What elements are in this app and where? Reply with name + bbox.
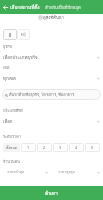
- staticText: ดูสิ่งที่ค้นหา: [43, 14, 64, 21]
- staticText: ประเภทที่พัก: [3, 108, 24, 114]
- staticText: เลือกประเภทธุรกิจ: [3, 54, 38, 61]
- button[interactable]: เลือก: [3, 118, 100, 125]
- button[interactable]: ราคาต่ำสุด: [3, 169, 48, 175]
- button[interactable]: ทุกเขต: [3, 75, 100, 82]
- button[interactable]: 2: [37, 143, 52, 152]
- staticText: ค้นหาด้วยชื่อธุรกิจ, โครงการ, ชื่ออาคาร: [9, 92, 75, 98]
- button[interactable]: Back: [0, 0, 10, 14]
- button[interactable]: Map view: [17, 29, 30, 40]
- button[interactable]: ราคาสูงสุด: [54, 169, 100, 175]
- staticText: ราคาต่ำสุด: [7, 169, 25, 175]
- button[interactable]: ค้นหา: [0, 186, 103, 200]
- staticText: ระดับราคา: [3, 134, 21, 140]
- button[interactable]: 5: [85, 143, 100, 152]
- staticText: ทุกเขต: [3, 75, 16, 82]
- staticText: 2: [43, 145, 46, 150]
- button[interactable]: เลือกประเภทธุรกิจ: [3, 54, 100, 61]
- staticText: 3: [59, 145, 62, 150]
- button[interactable]: 3: [53, 143, 68, 152]
- staticText: ธุรกิจ: [3, 44, 12, 50]
- button[interactable]: 4: [69, 143, 84, 152]
- staticText: 5: [91, 145, 94, 150]
- staticText: เลือก: [3, 118, 13, 125]
- staticText: เลือกสถานที่ตั้ง: [10, 4, 40, 11]
- button[interactable]: ทั้งหมด: [3, 143, 20, 152]
- button[interactable]: List view: [3, 29, 17, 40]
- button[interactable]: ค้นหาด้วยชื่อธุรกิจ, โครงการ, ชื่ออาคาร: [2, 89, 101, 100]
- button[interactable]: ดูสิ่งที่ค้นหา: [39, 14, 64, 21]
- staticText: ทั้งหมด: [6, 145, 18, 151]
- staticText: จำนวนคน: [3, 159, 20, 165]
- staticText: สำหรับเป็นที่ปักหมุด: [45, 4, 81, 11]
- staticText: เขต: [3, 65, 10, 71]
- staticText: 1: [27, 145, 30, 150]
- staticText: ค้นหา: [45, 189, 58, 197]
- staticText: ราคาสูงสุด: [58, 169, 75, 175]
- staticText: 4: [75, 145, 78, 150]
- button[interactable]: 1: [21, 143, 36, 152]
